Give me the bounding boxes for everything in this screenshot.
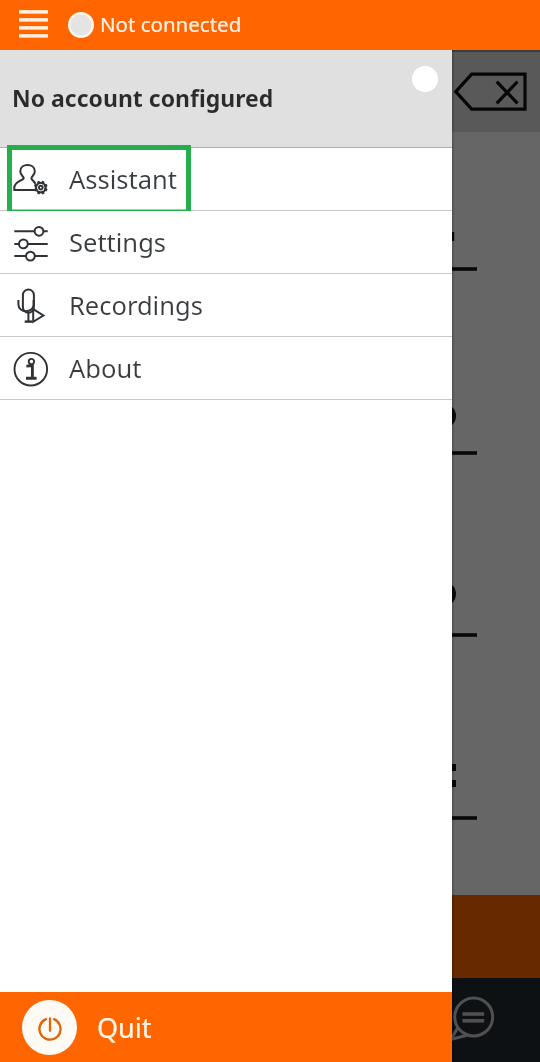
button[interactable]: Settings <box>0 211 452 274</box>
staticText: Quit <box>97 1009 152 1046</box>
button[interactable]: Open navigation menu <box>9 1 57 49</box>
button[interactable]: Recordings <box>0 274 452 337</box>
button[interactable]: Assistant <box>0 148 452 211</box>
staticText: Settings <box>69 225 167 260</box>
staticText: Recordings <box>69 288 203 323</box>
staticText: Assistant <box>69 162 177 197</box>
staticText: No account configured <box>12 82 274 113</box>
staticText: Not connected <box>100 10 242 38</box>
staticText: About <box>69 351 142 386</box>
button[interactable]: About <box>0 337 452 400</box>
button[interactable]: Quit <box>0 992 452 1062</box>
